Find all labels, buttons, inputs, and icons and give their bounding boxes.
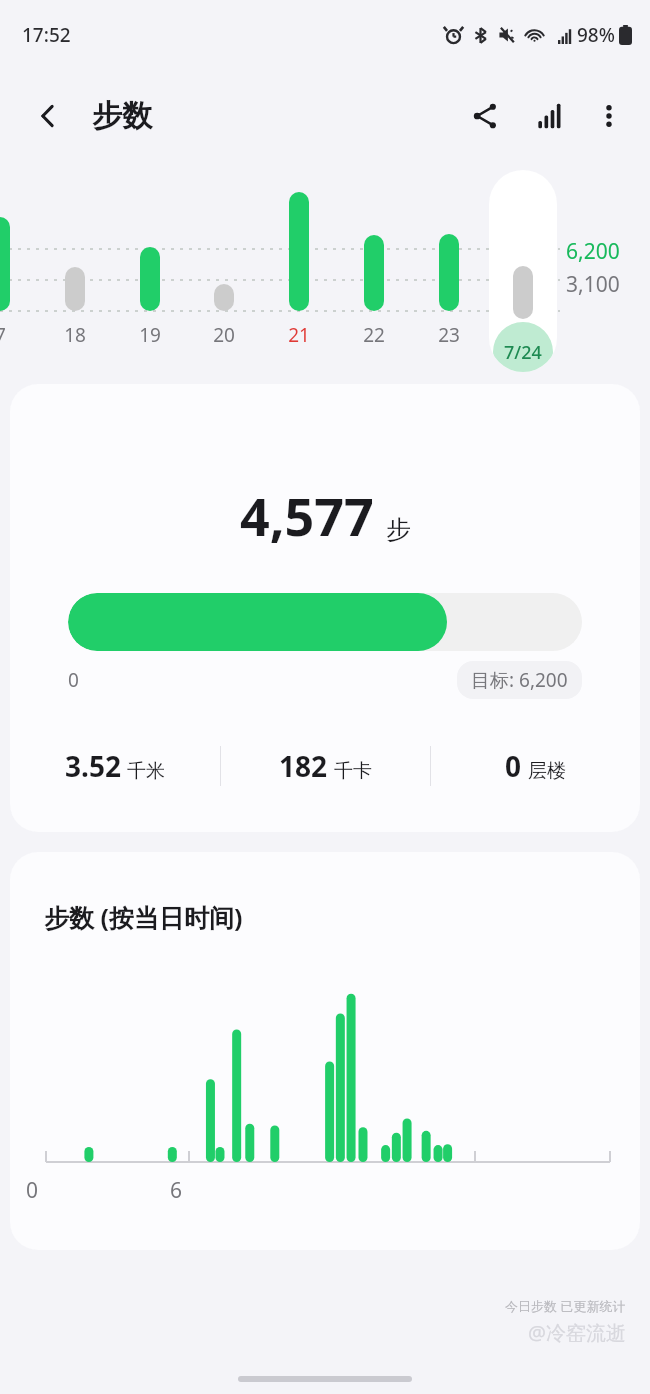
staticText: 7 [0,322,6,348]
staticText: 3.52 [65,747,121,785]
button[interactable]: 7/24 [489,170,557,372]
staticText: 182 [279,747,328,785]
staticText: 6,200 [566,237,620,266]
staticText: 今日步数 已更新统计 [505,1297,626,1315]
button[interactable]: 0 [431,739,640,793]
staticText: 98% [577,22,615,48]
staticText: 4,577 [240,480,374,551]
staticText: 层楼 [528,759,566,783]
button[interactable]: 182 [221,739,430,793]
staticText: 0 [505,747,522,785]
staticText: 步 [386,514,411,545]
staticText: 20 [213,322,235,348]
staticText: 21 [288,322,310,348]
staticText: 千米 [127,759,165,783]
staticText: 19 [139,322,161,348]
staticText: 23 [438,322,460,348]
button[interactable]: 分享 [458,89,512,143]
button[interactable]: 更多选项 [582,89,636,143]
staticText: 0 [68,667,79,693]
staticText: @冷窑流逝 [528,1319,626,1346]
button[interactable]: 统计 [522,89,576,143]
staticText: 18 [64,322,86,348]
button[interactable]: 返回 [22,90,74,142]
staticText: 7/24 [504,340,542,365]
button[interactable]: 步数 (按当日时间) [10,852,640,1250]
staticText: 22 [363,322,385,348]
staticText: 17:52 [22,22,71,48]
button[interactable]: 4,577 [10,384,640,832]
staticText: 千卡 [334,759,372,783]
staticText: 3,100 [566,270,620,299]
staticText: 步数 [92,97,152,135]
staticText: 步数 (按当日时间) [44,900,243,934]
staticText: 目标: 6,200 [471,667,568,693]
button[interactable]: 3.52 [10,739,220,793]
